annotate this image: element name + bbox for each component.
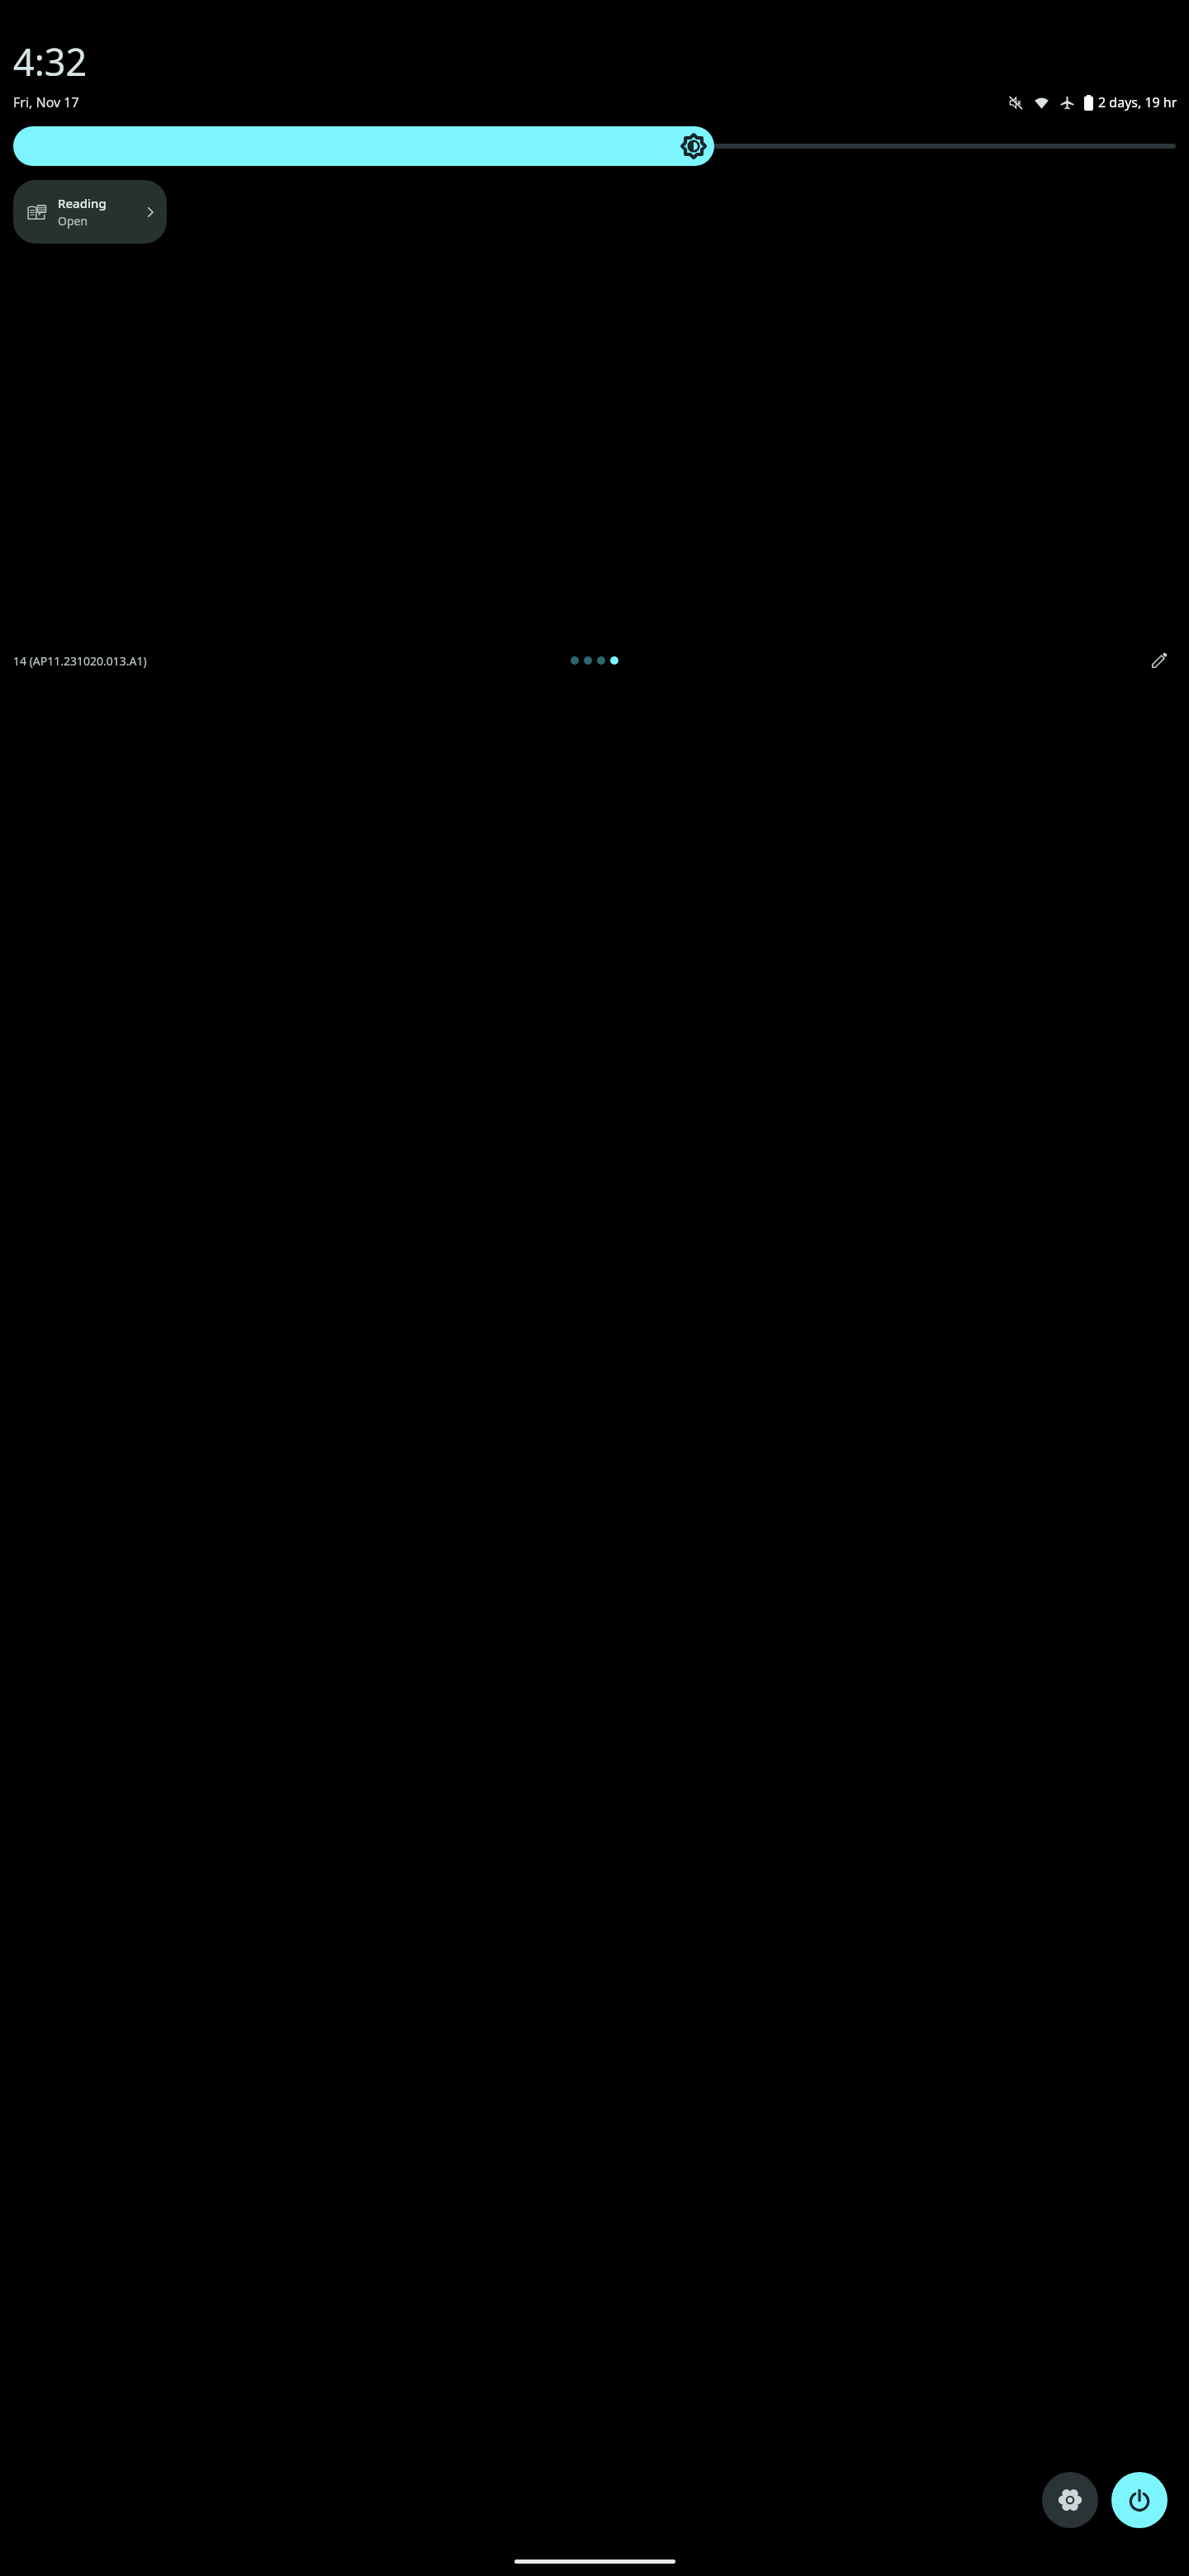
button[interactable]: Settings	[1042, 2472, 1098, 2528]
staticText: Fri, Nov 17	[13, 93, 79, 111]
button[interactable]: Edit	[1146, 647, 1172, 674]
staticText: 14 (AP11.231020.013.A1)	[13, 653, 147, 669]
button[interactable]: Brightness	[13, 126, 1176, 166]
staticText: Reading mode	[58, 195, 143, 211]
button[interactable]: Power	[1111, 2472, 1168, 2528]
staticText: Open	[58, 213, 88, 229]
staticText: 4:32	[13, 36, 88, 87]
staticText: 2 days, 19 hr	[1098, 93, 1177, 111]
button[interactable]: Reading mode	[13, 180, 167, 244]
